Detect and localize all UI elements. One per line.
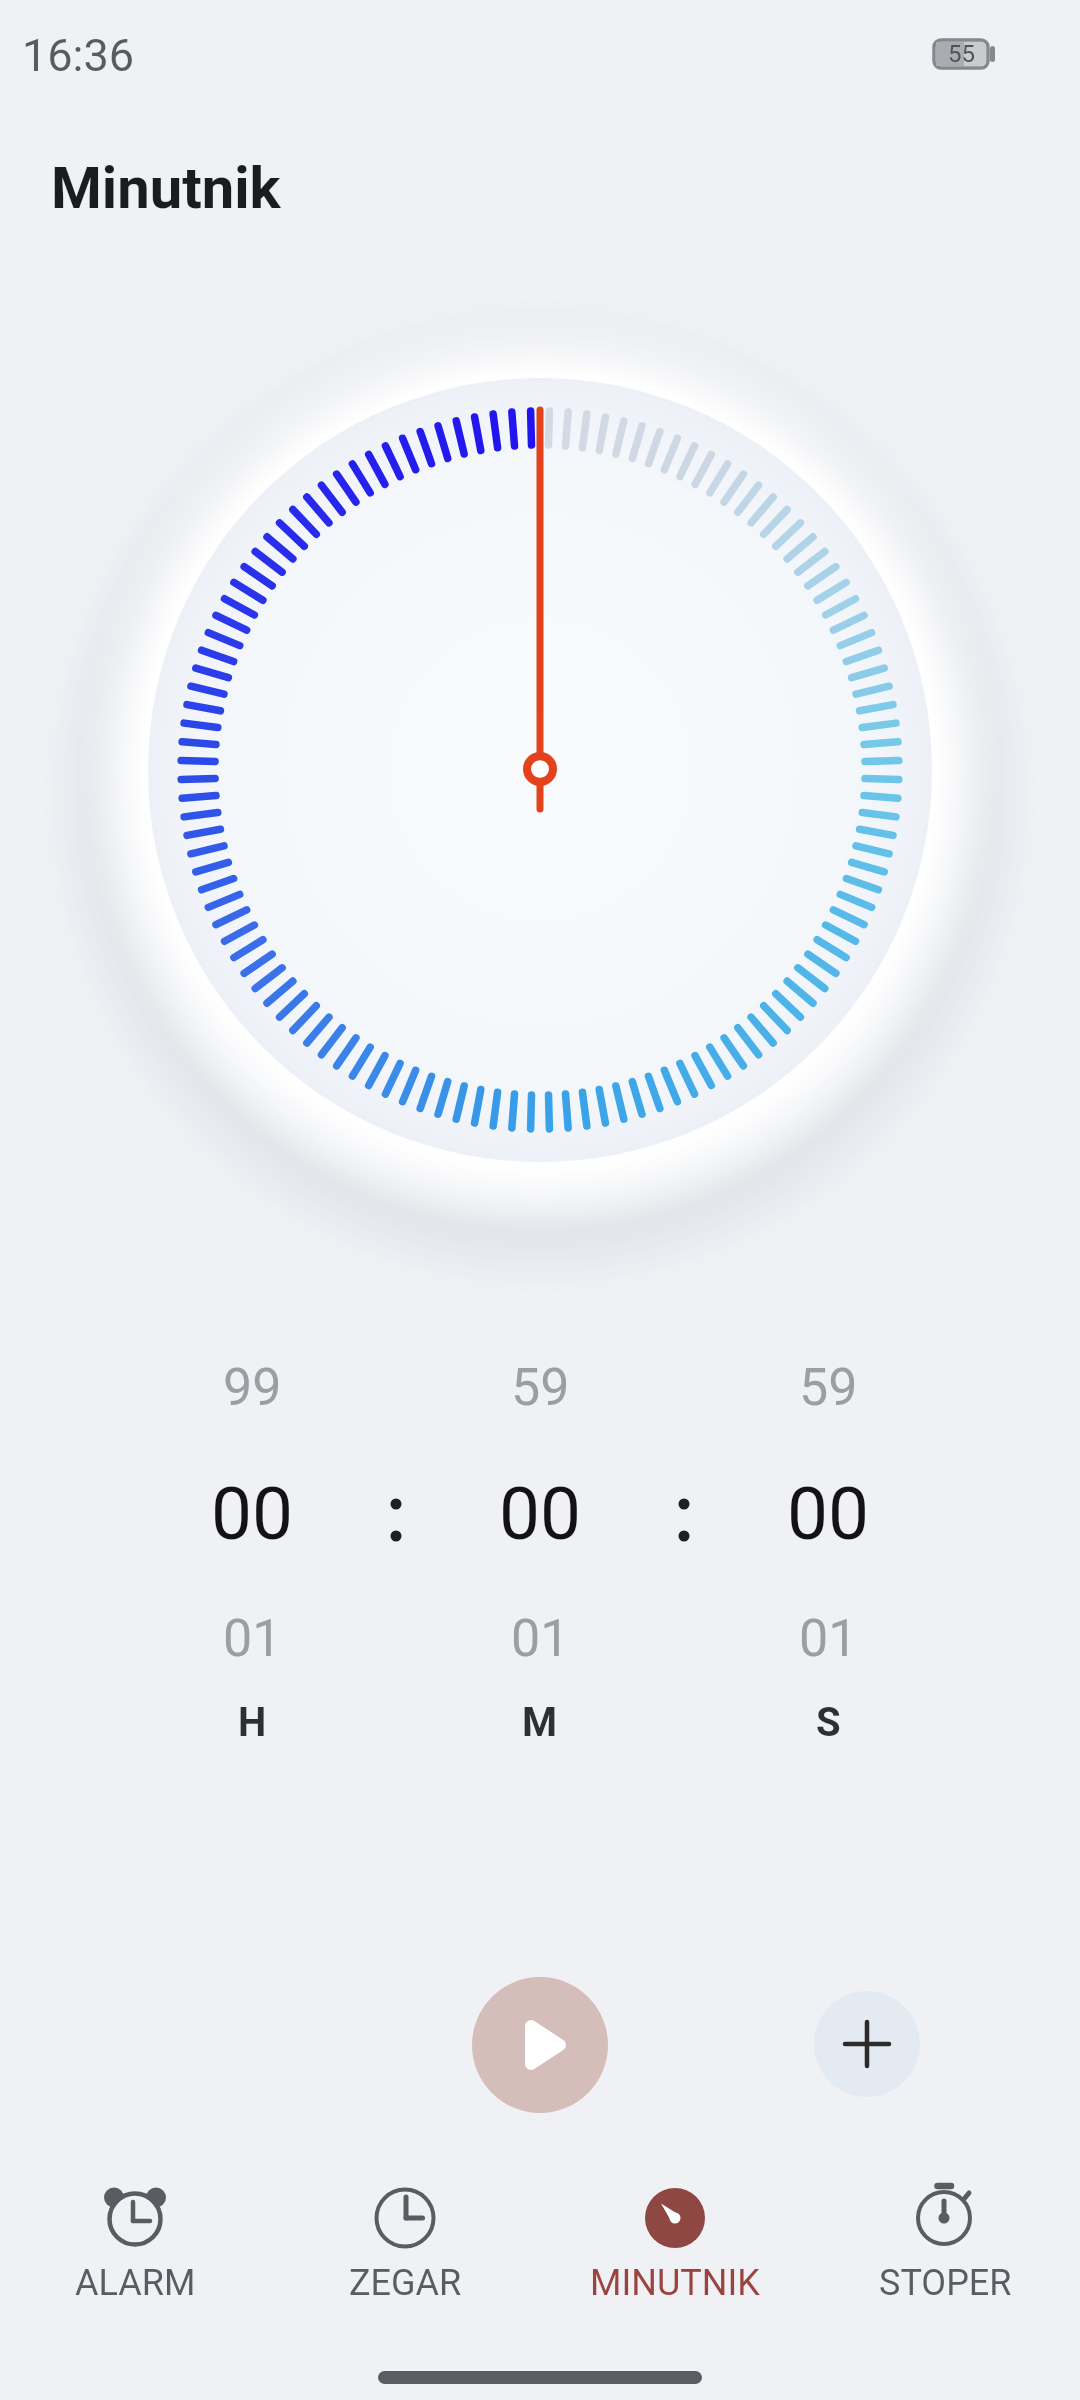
staticText: ALARM: [75, 2262, 196, 2304]
staticText: 00: [787, 1471, 870, 1557]
staticText: 00: [211, 1471, 294, 1557]
button[interactable]: 00: [142, 1444, 362, 1584]
button[interactable]: STOPER: [810, 2178, 1080, 2313]
staticText: M: [522, 1699, 558, 1746]
staticText: 01: [799, 1608, 858, 1669]
staticText: 00: [499, 1471, 582, 1557]
staticText: Minutnik: [51, 154, 281, 222]
staticText: H: [238, 1699, 267, 1746]
staticText: 01: [223, 1608, 282, 1669]
button[interactable]: ALARM: [0, 2178, 270, 2313]
button[interactable]: 00: [718, 1444, 938, 1584]
button[interactable]: ZEGAR: [270, 2178, 540, 2313]
button[interactable]: 00: [430, 1444, 650, 1584]
staticText: ZEGAR: [349, 2262, 462, 2304]
staticText: 99: [223, 1357, 282, 1418]
staticText: STOPER: [879, 2262, 1012, 2304]
button[interactable]: [472, 1977, 608, 2113]
staticText: 55: [948, 40, 975, 68]
staticText: S: [816, 1699, 841, 1746]
staticText: 16:36: [22, 29, 135, 82]
staticText: 59: [799, 1357, 858, 1418]
staticText: 01: [511, 1608, 570, 1669]
staticText: MINUTNIK: [590, 2262, 760, 2304]
button[interactable]: MINUTNIK: [540, 2178, 810, 2313]
staticText: 59: [511, 1357, 570, 1418]
button[interactable]: [814, 1991, 920, 2097]
